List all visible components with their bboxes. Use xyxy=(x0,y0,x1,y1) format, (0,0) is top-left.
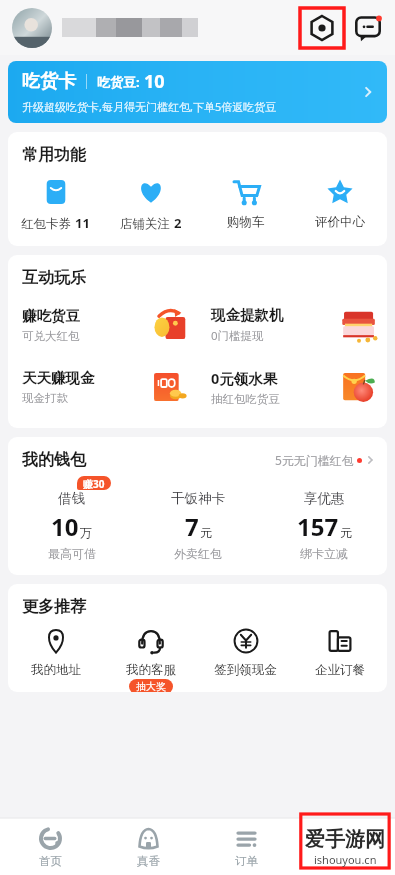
staticText: 我的客服 xyxy=(126,662,176,678)
staticText: 签到领现金 xyxy=(214,662,277,678)
button[interactable]: 真香 xyxy=(101,826,196,868)
button[interactable]: Profile avatar xyxy=(12,8,52,48)
button[interactable]: 赚吃货豆 xyxy=(22,294,191,356)
staticText: 真香 xyxy=(137,854,160,868)
staticText: 万 xyxy=(80,525,92,540)
staticText: 2 xyxy=(174,214,182,232)
button[interactable]: Messages xyxy=(353,13,383,43)
button[interactable]: 享优惠 xyxy=(261,476,387,561)
button[interactable]: 红包卡券 xyxy=(8,177,103,232)
button[interactable]: 干饭神卡 xyxy=(135,476,261,561)
staticText: 评价中心 xyxy=(315,214,365,230)
staticText: 元 xyxy=(200,525,212,540)
staticText: 7 xyxy=(185,510,199,543)
staticText: 最高可借 xyxy=(48,546,96,561)
staticText: 借钱 xyxy=(58,490,85,507)
button[interactable]: 我的客服 xyxy=(103,628,198,678)
button[interactable]: 0元领水果 xyxy=(211,356,381,418)
staticText: ishouyou.cn xyxy=(314,852,377,867)
button[interactable]: 企业订餐 xyxy=(293,628,387,678)
staticText: 现金提款机 xyxy=(211,306,284,324)
staticText: 0门槛提现 xyxy=(211,328,264,344)
staticText: 爱手游网 xyxy=(305,827,385,852)
staticText: 享优惠 xyxy=(304,490,345,507)
staticText: 吃货豆: xyxy=(97,73,144,91)
staticText: 更多推荐 xyxy=(22,597,86,617)
staticText: 干饭神卡 xyxy=(171,490,225,507)
staticText: 吃货卡 xyxy=(22,70,76,93)
staticText: 0元领水果 xyxy=(211,368,278,388)
button[interactable]: 天天赚现金 xyxy=(22,356,191,418)
staticText: 天天赚现金 xyxy=(22,369,95,387)
staticText: 外卖红包 xyxy=(174,546,222,561)
staticText: 赚吃货豆 xyxy=(22,307,80,325)
button[interactable]: 订单 xyxy=(199,826,294,868)
staticText: 10 xyxy=(51,510,79,543)
staticText: 购物车 xyxy=(227,214,265,230)
staticText: 元 xyxy=(340,525,352,540)
staticText: 10 xyxy=(144,69,165,94)
staticText: 绑卡立减 xyxy=(300,546,348,561)
button[interactable]: 签到领现金 xyxy=(198,628,293,678)
button[interactable]: 首页 xyxy=(3,826,98,868)
staticText: 157 xyxy=(297,510,339,543)
staticText: 赚30 xyxy=(83,477,105,489)
staticText: 企业订餐 xyxy=(315,662,365,678)
button[interactable]: 5元无门槛红包 xyxy=(275,452,377,468)
button[interactable]: My account xyxy=(297,822,392,872)
staticText: 可兑大红包 xyxy=(22,329,80,343)
button[interactable]: 评价中心 xyxy=(293,177,387,230)
staticText: 我的地址 xyxy=(31,662,81,678)
staticText: 红包卡券 xyxy=(21,215,75,232)
staticText: 5元无门槛红包 xyxy=(275,452,354,468)
staticText: 店铺关注 xyxy=(120,215,174,232)
button[interactable]: 赚30 xyxy=(8,476,135,561)
button[interactable]: 现金提款机 xyxy=(211,294,381,356)
staticText: 11 xyxy=(75,214,90,232)
staticText: 订单 xyxy=(235,854,258,868)
button[interactable]: 吃货卡 xyxy=(8,61,387,123)
staticText: 抽红包吃货豆 xyxy=(211,392,280,406)
button[interactable]: Scan xyxy=(307,13,337,43)
staticText: 升级超级吃货卡,每月得无门槛红包,下单5倍返吃货豆 xyxy=(22,99,277,114)
button[interactable]: 我的地址 xyxy=(8,628,103,678)
staticText: 我的钱包 xyxy=(22,450,86,470)
staticText: 常用功能 xyxy=(22,145,86,165)
staticText: 现金打款 xyxy=(22,391,68,405)
button[interactable]: 店铺关注 xyxy=(103,177,198,232)
staticText: 互动玩乐 xyxy=(22,268,86,288)
button[interactable]: 购物车 xyxy=(198,177,293,230)
staticText: 首页 xyxy=(39,854,62,868)
staticText: 抽大奖 xyxy=(136,680,166,692)
